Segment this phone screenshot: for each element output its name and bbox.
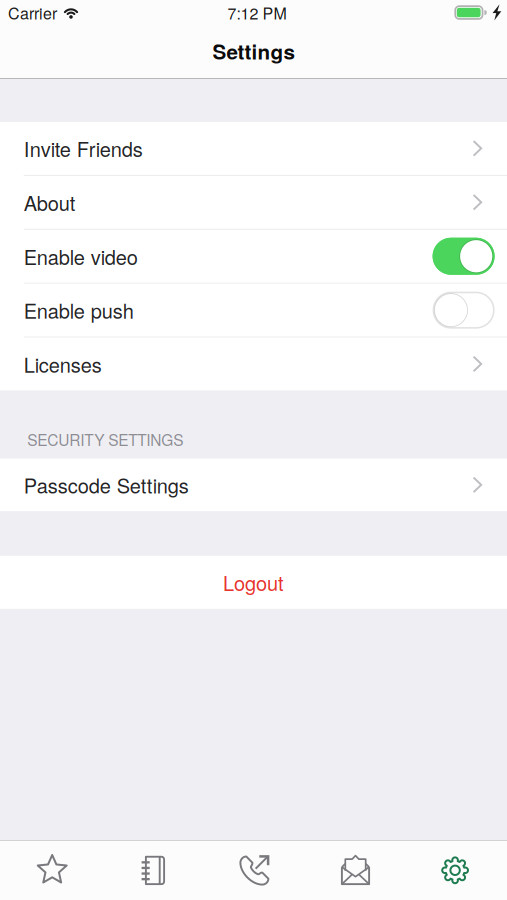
staticText: Settings	[212, 36, 294, 66]
staticText: Enable push	[24, 296, 134, 324]
button[interactable]: Favorites	[0, 841, 101, 900]
button[interactable]: Enable video	[0, 230, 507, 283]
staticText: Licenses	[24, 350, 102, 378]
staticText: About	[24, 188, 76, 217]
button[interactable]: Recents	[203, 841, 304, 900]
button[interactable]: Settings	[406, 841, 507, 900]
staticText: SECURITY SETTINGS	[27, 428, 183, 450]
staticText: Enable video	[24, 242, 138, 270]
button[interactable]: Logout	[0, 556, 507, 609]
staticText: Invite Friends	[24, 134, 143, 163]
staticText: Carrier	[8, 1, 57, 24]
button[interactable]: About	[0, 176, 507, 229]
button[interactable]: Contacts	[101, 841, 203, 900]
staticText: Passcode Settings	[24, 471, 189, 499]
staticText: Logout	[223, 568, 284, 597]
button[interactable]: Mail	[304, 841, 406, 900]
staticText: 7:12 PM	[227, 1, 286, 24]
button[interactable]: Invite Friends	[0, 122, 507, 175]
button[interactable]: Enable push	[0, 284, 507, 337]
button[interactable]: Licenses	[0, 338, 507, 390]
button[interactable]: Passcode Settings	[0, 458, 507, 511]
